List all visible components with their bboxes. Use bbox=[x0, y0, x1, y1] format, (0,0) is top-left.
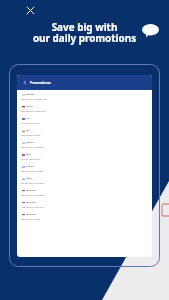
staticText: UNITED STATES bbox=[26, 214, 36, 216]
staticText: URUGUAY bbox=[26, 178, 33, 180]
button[interactable]: ARGENTINA bbox=[17, 140, 152, 152]
staticText: Top Savings to Argentina bbox=[21, 146, 45, 149]
staticText: ARGENTINA bbox=[26, 142, 34, 144]
button[interactable]: WORLDWIDE bbox=[17, 92, 152, 104]
button[interactable]: UNITED STATES bbox=[17, 188, 152, 200]
staticText: MEXICO bbox=[26, 154, 32, 156]
staticText: New product: Netflix bbox=[21, 218, 41, 221]
staticText: Great Rates for India bbox=[21, 134, 41, 137]
button[interactable]: UNITED STATES bbox=[17, 212, 152, 224]
staticText: UNITED STATES bbox=[26, 202, 36, 204]
button[interactable]: Chat bbox=[142, 24, 160, 38]
staticText: Save on Mexico Calls bbox=[21, 158, 41, 161]
staticText: NICARAGUA bbox=[26, 166, 34, 168]
button[interactable]: Close bbox=[24, 4, 37, 17]
button[interactable]: Promotions bbox=[17, 75, 152, 90]
button[interactable]: GERMANY bbox=[17, 104, 152, 116]
staticText: GERMANY bbox=[26, 106, 33, 108]
staticText: New Rates to Nicaragua bbox=[21, 170, 44, 173]
staticText: Promotions bbox=[30, 80, 51, 85]
staticText: Save big with our daily promotions bbox=[0, 20, 169, 45]
staticText: UNITED STATES bbox=[26, 190, 36, 192]
staticText: Top Savings for Uruguay bbox=[21, 182, 45, 185]
staticText: CUBA bbox=[26, 118, 30, 120]
staticText: New product: Xbox Live bbox=[21, 206, 43, 209]
button[interactable]: MEXICO bbox=[17, 152, 152, 164]
button[interactable]: NICARAGUA bbox=[17, 164, 152, 176]
staticText: Cheap Calls to Cuba bbox=[21, 122, 40, 125]
staticText: INDIA bbox=[26, 130, 30, 132]
staticText: WORLDWIDE bbox=[26, 94, 35, 96]
button[interactable]: INDIA bbox=[17, 128, 152, 140]
button[interactable]: UNITED STATES bbox=[17, 200, 152, 212]
button[interactable]: CUBA bbox=[17, 116, 152, 128]
staticText: New product: Playstation bbox=[21, 194, 45, 197]
button[interactable]: URUGUAY bbox=[17, 176, 152, 188]
staticText: Top Savings On Global Calls bbox=[21, 98, 47, 101]
staticText: Special Rates for Germany bbox=[21, 110, 46, 113]
